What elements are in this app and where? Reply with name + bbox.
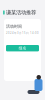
staticText: 2024年3月15日 14:00: [6, 31, 39, 35]
staticText: 谦某活动推荐: [6, 9, 36, 16]
staticText: 活动时间: [6, 24, 22, 29]
button[interactable]: 报名: [6, 45, 39, 51]
staticText: 报名: [18, 46, 26, 51]
